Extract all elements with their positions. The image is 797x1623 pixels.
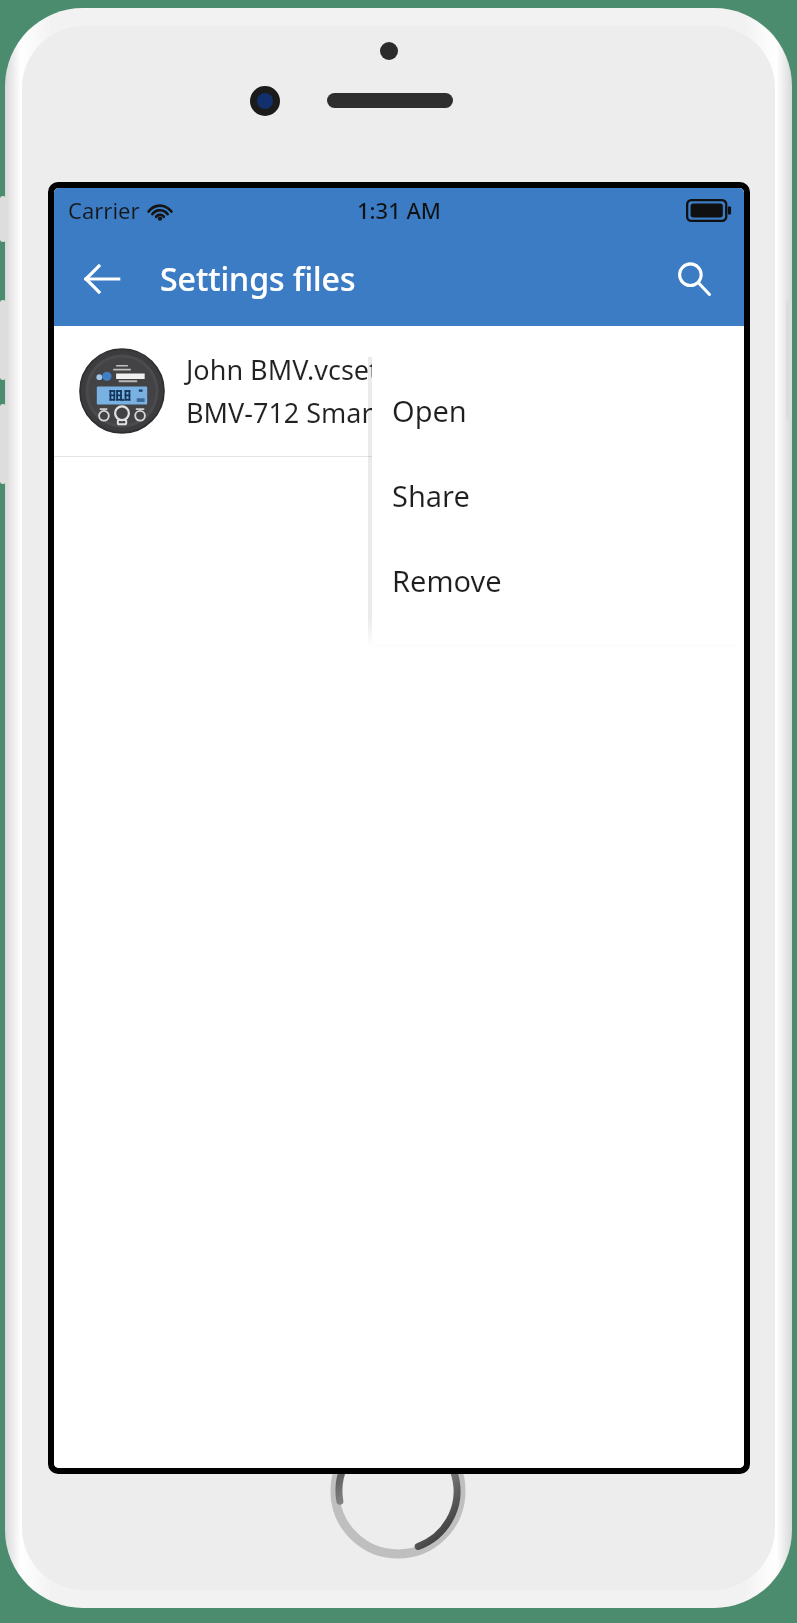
staticText: John BMV.vcsettings xyxy=(186,351,442,388)
staticText: 1:31 AM xyxy=(357,195,442,225)
button[interactable]: John BMV.vcsettings xyxy=(54,326,744,456)
button[interactable]: Remove xyxy=(372,538,744,623)
staticText: Carrier xyxy=(68,195,140,225)
staticText: Remove xyxy=(392,561,502,600)
staticText: BMV-712 Smart xyxy=(186,394,383,431)
staticText: Settings files xyxy=(160,257,356,301)
button[interactable]: Share xyxy=(372,453,744,538)
button[interactable]: Open xyxy=(372,368,744,453)
staticText: Open xyxy=(392,391,467,430)
staticText: Share xyxy=(392,476,470,515)
button[interactable]: Back xyxy=(70,247,134,311)
button[interactable]: Search xyxy=(662,247,726,311)
